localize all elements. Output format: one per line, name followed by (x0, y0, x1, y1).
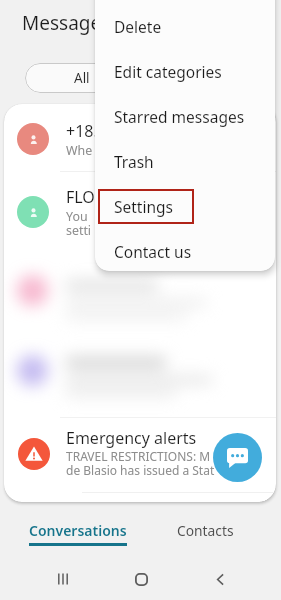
staticText: Emergency alerts (66, 427, 197, 449)
button[interactable]: All (25, 63, 139, 93)
staticText: You (66, 208, 88, 225)
button[interactable]: New conversation (213, 433, 262, 482)
staticText: All (74, 69, 90, 87)
staticText: setti (66, 222, 92, 239)
staticText: +18... (66, 120, 107, 142)
staticText: Messages (22, 10, 111, 36)
staticText: TRAVEL RESTRICTIONS: M (66, 448, 211, 464)
button[interactable]: Settings (95, 184, 275, 228)
button[interactable]: Trash (95, 139, 275, 183)
staticText: Contact us (114, 241, 192, 262)
button[interactable]: Edit categories (95, 49, 275, 93)
staticText: Delete (114, 16, 162, 37)
staticText: Contacts (177, 521, 234, 540)
staticText: Whe (66, 142, 93, 159)
staticText: Starred messages (114, 106, 245, 127)
button[interactable]: Conversations (12, 521, 143, 551)
button[interactable]: Home (122, 560, 160, 598)
button[interactable]: Starred messages (95, 94, 275, 138)
button[interactable]: Delete (95, 4, 275, 48)
button[interactable]: Contacts (144, 521, 266, 551)
button[interactable]: Contact us (95, 229, 275, 271)
staticText: FLO (66, 186, 95, 208)
staticText: Settings (114, 196, 173, 217)
button[interactable]: Back (201, 560, 239, 598)
staticText: Trash (114, 151, 154, 172)
staticText: de Blasio has issued a Stat (66, 462, 215, 478)
staticText: Conversations (29, 521, 127, 540)
button[interactable] (0, 518, 281, 546)
button[interactable]: Recents (44, 560, 82, 598)
staticText: 1 (241, 432, 248, 447)
staticText: Edit categories (114, 61, 222, 82)
